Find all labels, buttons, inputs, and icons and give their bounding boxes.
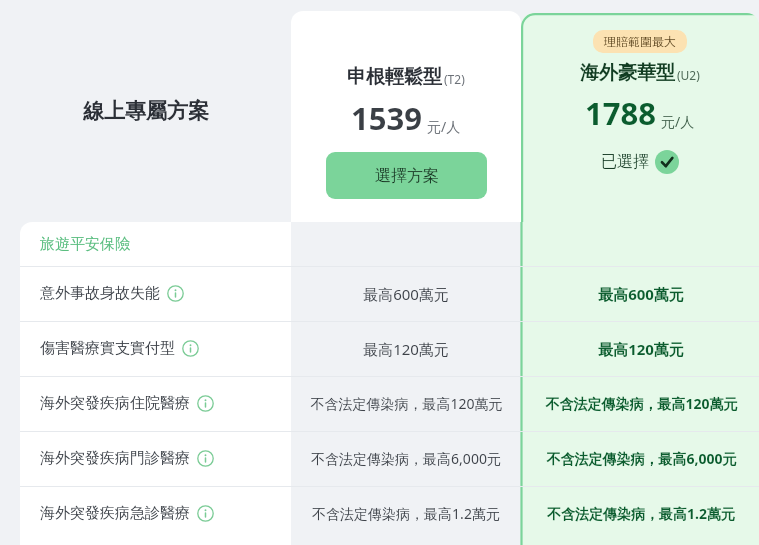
staticText: 傷害醫療實支實付型 — [40, 339, 175, 358]
staticText: 最高600萬元 — [598, 284, 684, 304]
staticText: 旅遊平安保險 — [40, 235, 130, 254]
staticText: 理賠範圍最大 — [604, 34, 676, 49]
staticText: 已選擇 — [601, 152, 649, 172]
staticText: 最高120萬元 — [363, 339, 449, 359]
button[interactable]: 選擇方案 — [326, 152, 487, 199]
button[interactable]: 海外突發疾病住院醫療 — [0, 376, 759, 431]
staticText: 不含法定傳染病，最高1.2萬元 — [312, 504, 500, 523]
staticText: 線上專屬方案 — [83, 98, 209, 124]
button[interactable]: 理賠範圍最大 — [521, 13, 759, 222]
staticText: 不含法定傳染病，最高120萬元 — [545, 394, 738, 413]
button[interactable]: 海外突發疾病急診醫療 — [0, 486, 759, 541]
staticText: 元/人 — [427, 117, 461, 136]
button[interactable]: 海外突發疾病門診醫療 — [0, 431, 759, 486]
staticText: 申根輕鬆型 — [347, 65, 442, 89]
staticText: 意外事故身故失能 — [40, 284, 160, 303]
button[interactable]: More info about 海外突發疾病門診醫療 — [197, 450, 214, 467]
staticText: 選擇方案 — [375, 166, 439, 186]
staticText: 海外豪華型 — [580, 61, 675, 85]
staticText: 不含法定傳染病，最高120萬元 — [310, 394, 503, 413]
button[interactable]: 已選擇 — [601, 150, 679, 174]
staticText: 元/人 — [661, 112, 695, 131]
staticText: 海外突發疾病住院醫療 — [40, 394, 190, 413]
button[interactable]: More info about 海外突發疾病住院醫療 — [197, 395, 214, 412]
button[interactable]: More info about 意外事故身故失能 — [167, 285, 184, 302]
staticText: 不含法定傳染病，最高6,000元 — [311, 449, 501, 468]
other: Selected — [655, 150, 679, 174]
button[interactable]: More info about 傷害醫療實支實付型 — [182, 340, 199, 357]
staticText: 不含法定傳染病，最高6,000元 — [546, 449, 737, 468]
staticText: 海外突發疾病急診醫療 — [40, 504, 190, 523]
button[interactable]: 傷害醫療實支實付型 — [0, 321, 759, 376]
staticText: 1788 — [585, 92, 656, 134]
button[interactable]: 意外事故身故失能 — [0, 266, 759, 321]
staticText: 海外突發疾病門診醫療 — [40, 449, 190, 468]
button[interactable]: 申根輕鬆型 — [291, 11, 521, 222]
staticText: 最高120萬元 — [598, 339, 684, 359]
staticText: (T2) — [444, 71, 465, 87]
staticText: 最高600萬元 — [363, 284, 449, 304]
staticText: 不含法定傳染病，最高1.2萬元 — [547, 504, 735, 523]
staticText: 1539 — [351, 97, 422, 139]
button[interactable]: More info about 海外突發疾病急診醫療 — [197, 505, 214, 522]
staticText: (U2) — [677, 67, 700, 83]
